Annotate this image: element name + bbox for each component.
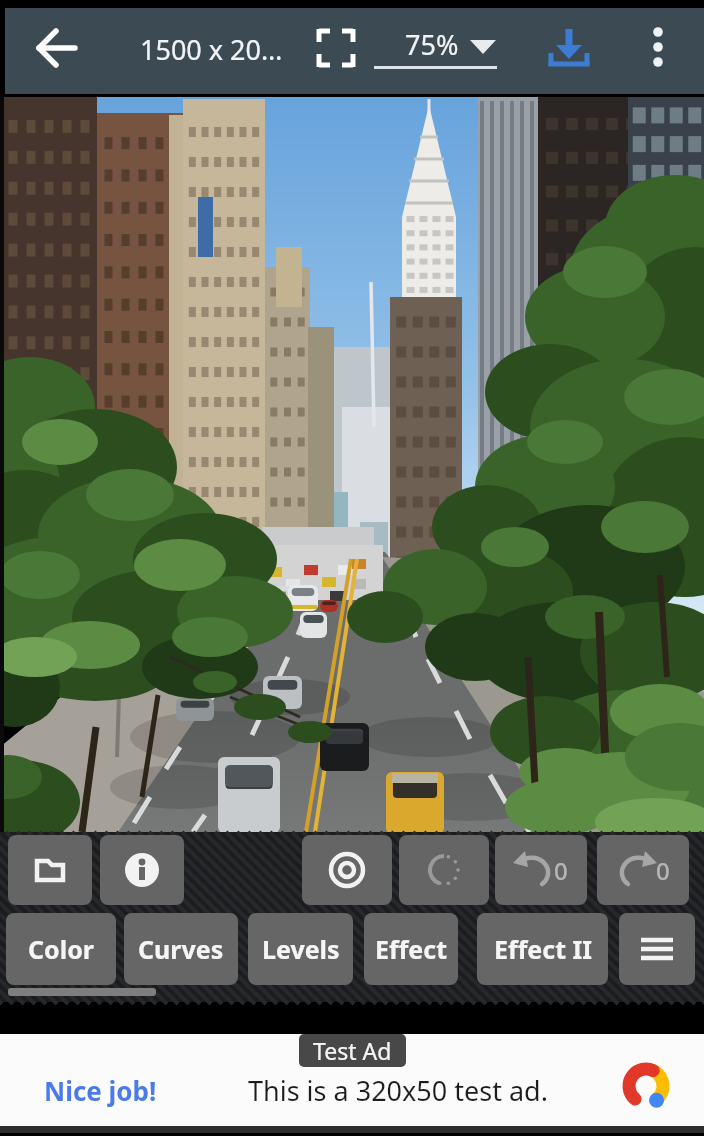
button[interactable]: Effect II — [477, 913, 608, 985]
button[interactable] — [8, 835, 92, 905]
staticText: Effect II — [494, 932, 592, 966]
button[interactable] — [399, 835, 489, 905]
staticText: Test Ad — [313, 1035, 392, 1066]
staticText: Nice job! — [44, 1073, 157, 1108]
button[interactable]: Levels — [248, 913, 353, 985]
staticText: This is a 320x50 test ad. — [248, 1072, 548, 1108]
staticText: Effect — [375, 932, 447, 966]
button[interactable]: Effect — [364, 913, 458, 985]
button[interactable]: Curves — [124, 913, 238, 985]
button[interactable] — [640, 24, 676, 72]
button[interactable] — [30, 22, 84, 74]
staticText: 0 — [656, 854, 670, 887]
button[interactable]: 0 — [597, 835, 689, 905]
staticText: 0 — [554, 854, 568, 887]
staticText: Curves — [138, 932, 224, 966]
button[interactable]: 0 — [495, 835, 587, 905]
button[interactable] — [100, 835, 184, 905]
button[interactable] — [316, 28, 356, 68]
button[interactable]: Color — [6, 913, 116, 985]
button[interactable]: 75% — [372, 18, 500, 74]
button[interactable] — [302, 835, 392, 905]
staticText: 75% — [405, 26, 459, 62]
button[interactable]: Test Ad — [0, 1034, 704, 1136]
staticText: Levels — [262, 932, 340, 966]
button[interactable] — [544, 24, 594, 72]
button[interactable] — [619, 913, 695, 985]
staticText: Color — [28, 932, 94, 966]
staticText: 1500 x 20… — [140, 31, 283, 68]
